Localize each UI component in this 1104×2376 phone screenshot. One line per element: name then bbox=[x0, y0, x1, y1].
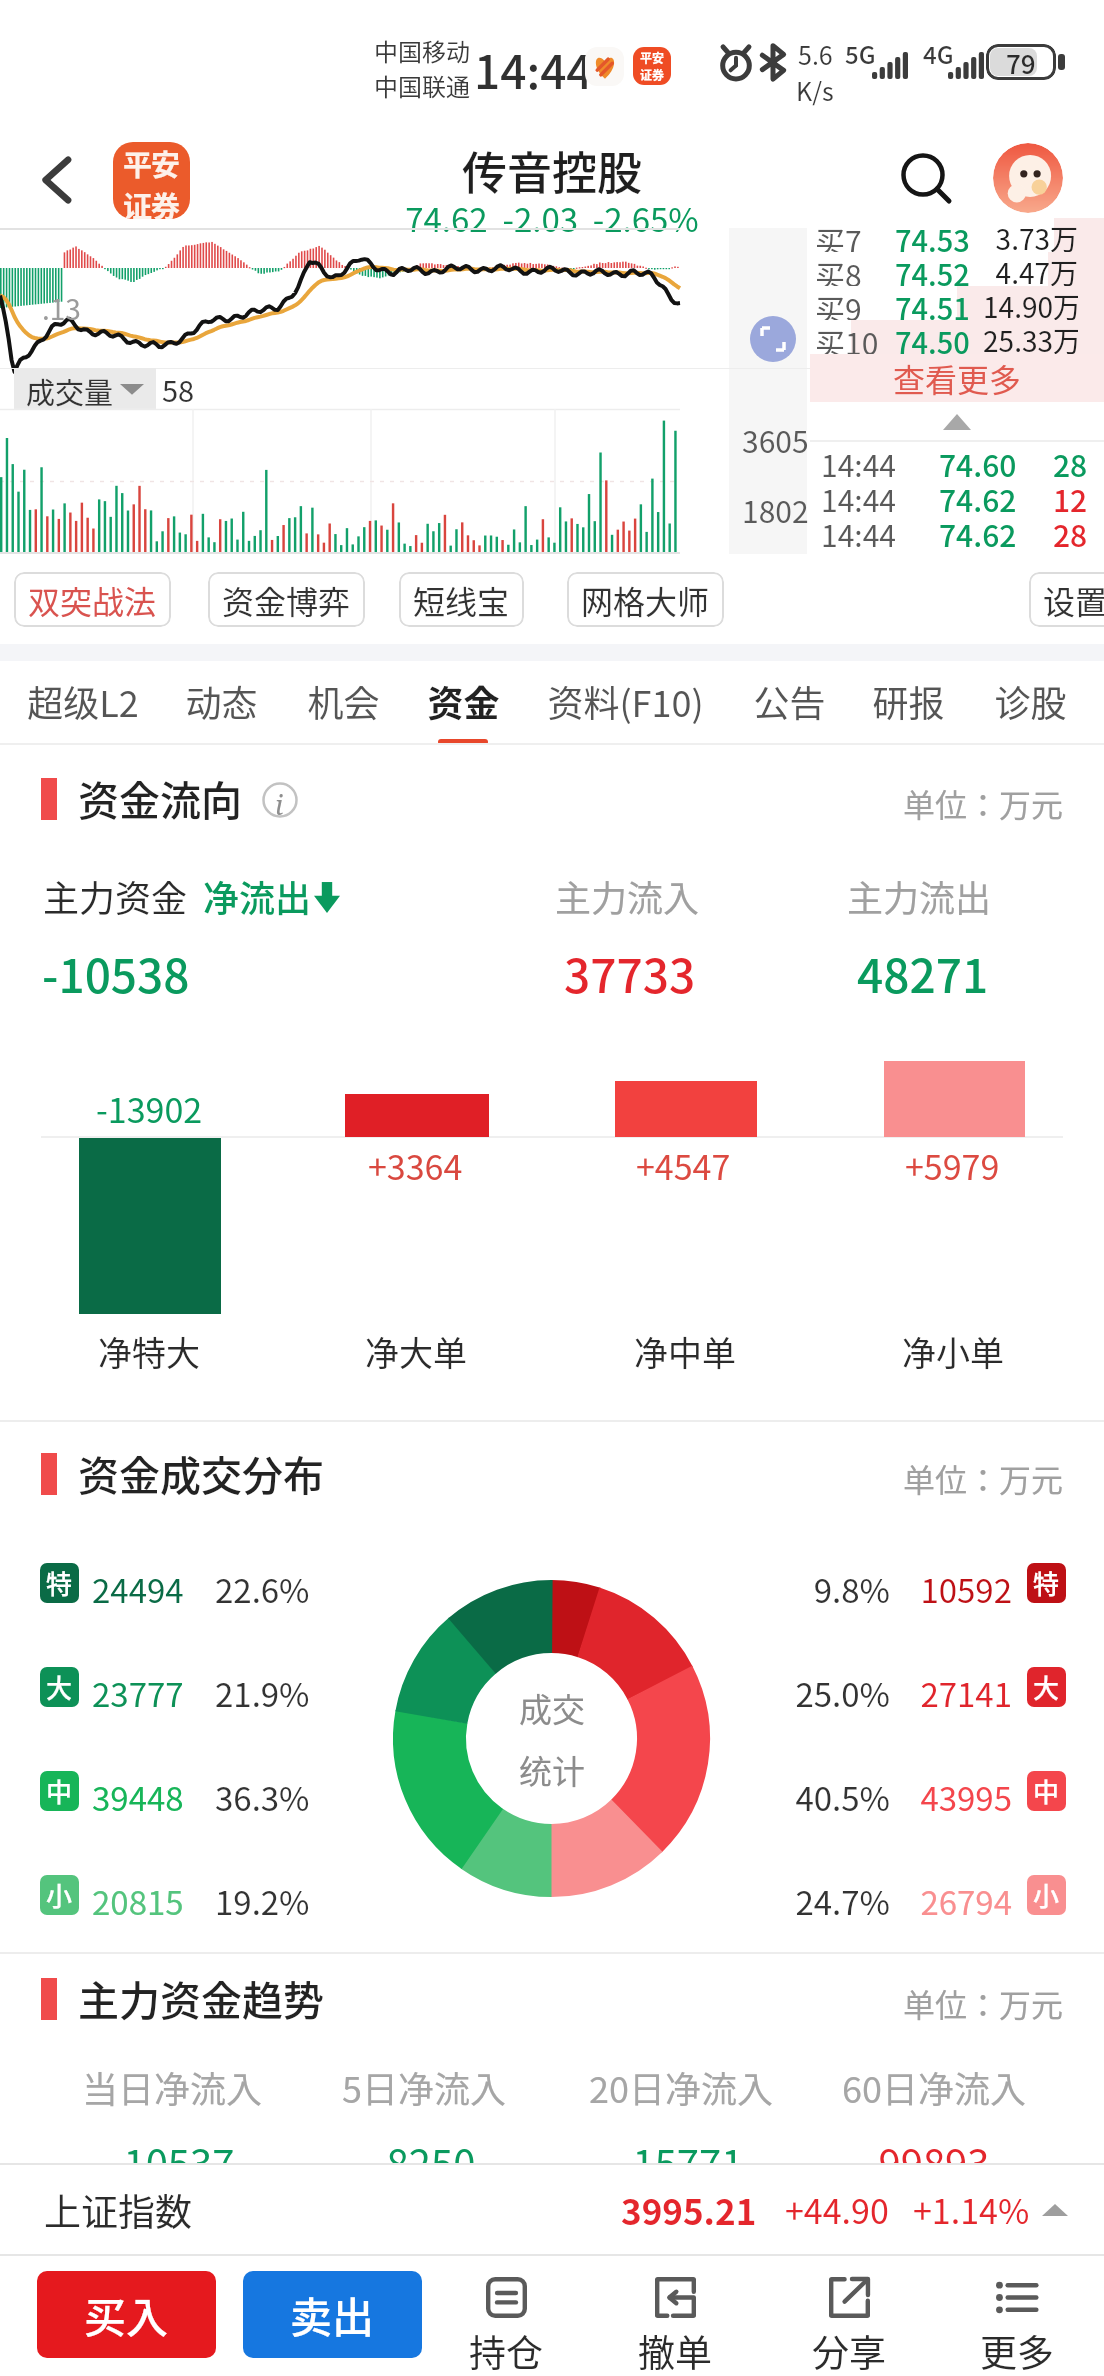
button[interactable]: 上证指数 bbox=[0, 2163, 1104, 2256]
button[interactable]: 双突战法 bbox=[14, 572, 171, 627]
staticText: 传音控股 bbox=[0, 138, 1104, 203]
button[interactable]: 公告 bbox=[699, 661, 879, 745]
staticText: 主力资金 bbox=[43, 870, 188, 922]
staticText: 9.8% bbox=[780, 1565, 890, 1613]
staticText: 机会 bbox=[307, 675, 380, 727]
staticText: 48271 bbox=[857, 940, 989, 1007]
staticText: 25.33万 bbox=[983, 320, 1078, 354]
button[interactable]: 返回 bbox=[18, 140, 98, 220]
staticText: 43995 bbox=[882, 1773, 1012, 1821]
staticText: 研报 bbox=[872, 675, 945, 727]
staticText: 资金成交分布 bbox=[78, 1443, 324, 1502]
staticText: 资金 bbox=[427, 675, 500, 727]
button[interactable]: 全屏 bbox=[750, 316, 796, 362]
button[interactable]: 资金博弈 bbox=[208, 572, 365, 627]
button[interactable]: 我的 bbox=[993, 143, 1063, 213]
button[interactable]: 短线宝 bbox=[399, 572, 524, 627]
button[interactable]: 搜索 bbox=[888, 140, 970, 222]
staticText: 21.9% bbox=[215, 1669, 310, 1717]
staticText: +1.14% bbox=[913, 2185, 1030, 2234]
staticText: 3.73万 bbox=[983, 218, 1078, 252]
staticText: 74.53 bbox=[895, 218, 970, 252]
staticText: 短线宝 bbox=[413, 577, 510, 623]
staticText: 分享 bbox=[812, 2324, 886, 2376]
staticText: 证券 bbox=[123, 184, 180, 219]
staticText: 小 bbox=[46, 1876, 73, 1914]
staticText: +3364 bbox=[368, 1141, 463, 1190]
staticText: 买入 bbox=[84, 2284, 169, 2345]
button[interactable]: 更多 bbox=[952, 2256, 1082, 2376]
button[interactable]: 动态 bbox=[131, 661, 311, 745]
staticText: 设置 bbox=[1043, 577, 1104, 623]
staticText: 持仓 bbox=[469, 2324, 543, 2376]
staticText: 28 bbox=[1053, 512, 1088, 547]
staticText: 资金博弈 bbox=[222, 577, 351, 623]
staticText: 23777 bbox=[92, 1669, 184, 1717]
button[interactable]: 设置 bbox=[1029, 572, 1104, 627]
button[interactable]: 查看更多 bbox=[810, 354, 1104, 402]
staticText: 诊股 bbox=[994, 675, 1067, 727]
staticText: 40.5% bbox=[780, 1773, 890, 1821]
staticText: 5G bbox=[845, 36, 876, 71]
button[interactable]: 买7 bbox=[810, 218, 1104, 252]
button[interactable]: 成交量 bbox=[14, 368, 156, 409]
button[interactable]: 网格大师 bbox=[567, 572, 724, 627]
staticText: 中国移动 bbox=[374, 33, 470, 68]
staticText: -8250 bbox=[294, 2133, 554, 2191]
staticText: 中国联通 bbox=[374, 68, 470, 103]
staticText: 14.90万 bbox=[983, 286, 1078, 320]
button[interactable]: 分享 bbox=[784, 2256, 914, 2376]
button[interactable]: 超级L2 bbox=[0, 661, 173, 745]
staticText: +44.90 bbox=[785, 2185, 889, 2234]
button[interactable]: 买10 bbox=[810, 320, 1104, 354]
staticText: 买10 bbox=[815, 320, 879, 354]
button[interactable]: 机会 bbox=[253, 661, 433, 745]
staticText: 74.52 bbox=[895, 252, 970, 286]
staticText: 中 bbox=[1033, 1772, 1060, 1810]
staticText: -13902 bbox=[96, 1084, 203, 1133]
staticText: 网格大师 bbox=[581, 577, 710, 623]
staticText: i bbox=[275, 786, 284, 823]
button[interactable]: 买9 bbox=[810, 286, 1104, 320]
staticText: 3605 bbox=[742, 418, 809, 461]
staticText: 74.62 bbox=[939, 512, 1017, 547]
button[interactable]: 卖出 bbox=[243, 2271, 422, 2358]
staticText: 19.2% bbox=[215, 1877, 310, 1925]
staticText: 上证指数 bbox=[44, 2183, 192, 2237]
button[interactable]: 研报 bbox=[818, 661, 998, 745]
staticText: 5日净流入 bbox=[294, 2061, 554, 2113]
staticText: 查看更多 bbox=[893, 355, 1022, 401]
staticText: 买7 bbox=[815, 218, 862, 252]
staticText: 净特大 bbox=[98, 1327, 200, 1376]
staticText: 主力资金趋势 bbox=[78, 1968, 324, 2027]
staticText: 买8 bbox=[815, 252, 862, 286]
button[interactable]: 持仓 bbox=[441, 2256, 571, 2376]
button[interactable]: 买入 bbox=[37, 2271, 216, 2358]
button[interactable]: 14:44 bbox=[810, 512, 1104, 547]
staticText: 28 bbox=[1053, 442, 1088, 477]
staticText: 37733 bbox=[564, 940, 696, 1007]
staticText: -10538 bbox=[42, 940, 190, 1007]
staticText: 单位：万元 bbox=[903, 1455, 1064, 1501]
staticText: 更多 bbox=[980, 2324, 1054, 2376]
staticText: 74.62 -2.03 -2.65% bbox=[0, 194, 1104, 242]
staticText: 4G bbox=[923, 36, 954, 71]
button[interactable]: 诊股 bbox=[940, 661, 1104, 745]
staticText: +4547 bbox=[636, 1141, 731, 1190]
staticText: 14:44 bbox=[821, 512, 896, 547]
button[interactable]: 买8 bbox=[810, 252, 1104, 286]
staticText: 净中单 bbox=[634, 1327, 736, 1376]
staticText: 统计 bbox=[519, 1746, 585, 1794]
button[interactable]: 平安证券 bbox=[113, 142, 190, 219]
staticText: 14:44 bbox=[821, 477, 896, 512]
button[interactable]: 14:44 bbox=[810, 477, 1104, 512]
button[interactable]: 资金 bbox=[373, 661, 553, 745]
staticText: 资料(F10) bbox=[547, 675, 704, 727]
staticText: 14:44 bbox=[474, 36, 593, 103]
button[interactable]: 撤单 bbox=[610, 2256, 740, 2376]
button[interactable]: 14:44 bbox=[810, 442, 1104, 477]
button[interactable]: 资料(F10) bbox=[535, 661, 715, 745]
staticText: K/s bbox=[796, 72, 834, 108]
staticText: 99893 bbox=[804, 2133, 1064, 2191]
staticText: 14:44 bbox=[821, 442, 896, 477]
